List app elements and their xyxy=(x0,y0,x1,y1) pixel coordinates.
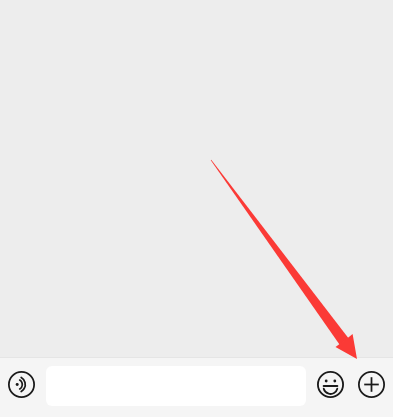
button[interactable]: Emoji xyxy=(312,366,349,403)
button[interactable]: Voice input xyxy=(3,366,39,402)
button[interactable]: More xyxy=(353,366,390,403)
